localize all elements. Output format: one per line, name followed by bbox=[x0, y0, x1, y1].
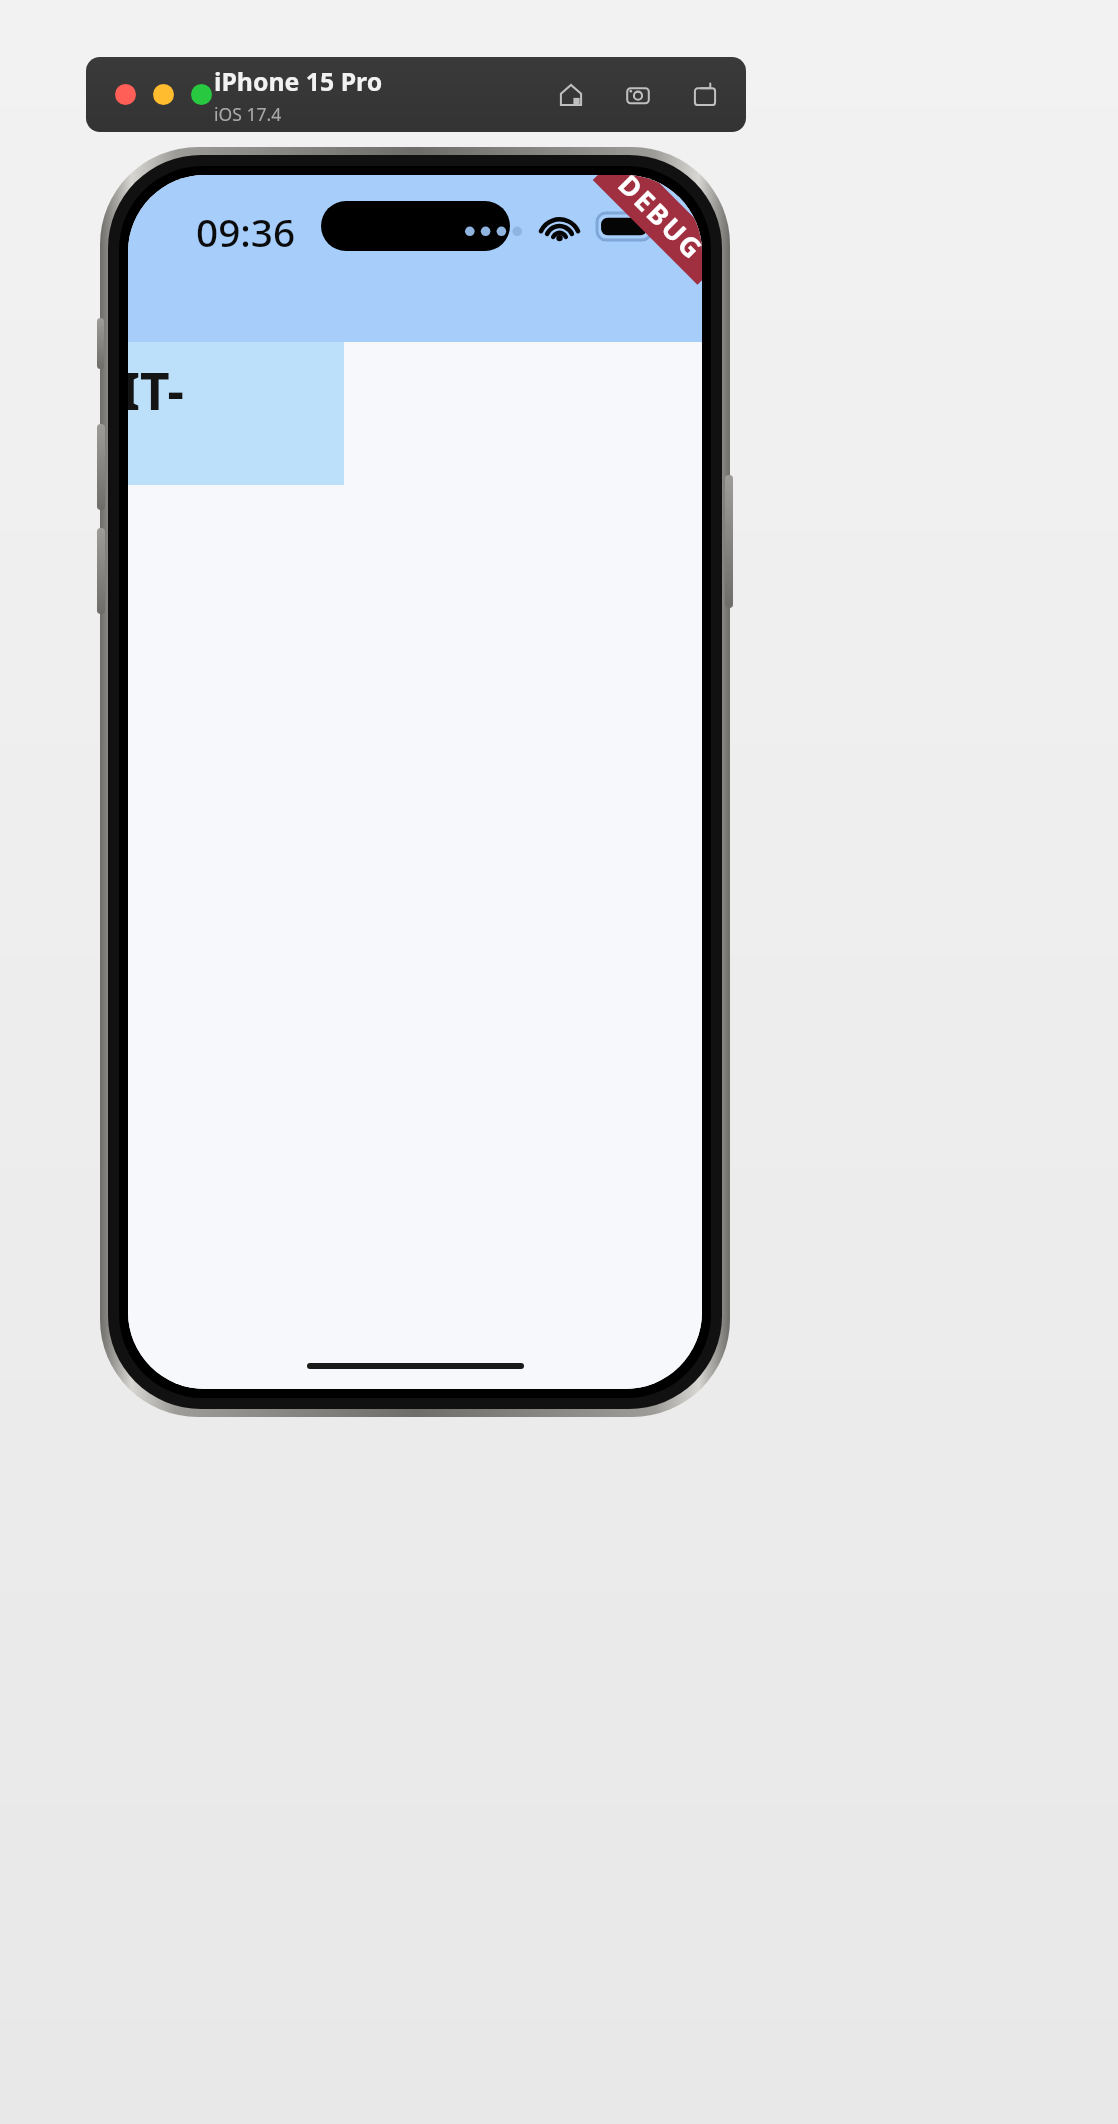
button[interactable]: Zoom bbox=[191, 84, 212, 105]
staticText: IT-Квантум bbox=[128, 355, 336, 425]
staticText: iOS 17.4 bbox=[214, 102, 282, 126]
button[interactable]: IT-Квантум bbox=[128, 342, 344, 485]
button[interactable]: Minimize bbox=[153, 84, 174, 105]
staticText: 09:36 bbox=[196, 206, 296, 259]
button[interactable]: Record bbox=[688, 78, 722, 112]
staticText: DEBUG bbox=[610, 175, 702, 268]
button[interactable]: Home bbox=[554, 78, 588, 112]
staticText: iPhone 15 Pro bbox=[214, 64, 383, 98]
button[interactable]: Close bbox=[115, 84, 136, 105]
button[interactable]: Screenshot bbox=[621, 78, 655, 112]
